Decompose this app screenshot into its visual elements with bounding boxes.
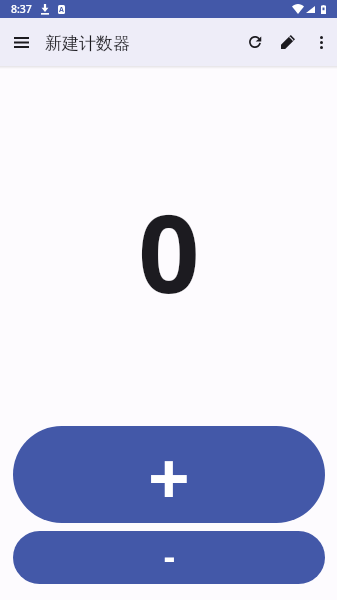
button[interactable]: More options (305, 26, 337, 58)
staticText: 0 (138, 178, 200, 325)
staticText: + (148, 427, 190, 523)
button[interactable]: + (13, 426, 325, 523)
button[interactable]: Navigation menu (7, 28, 35, 56)
button[interactable]: Reset (239, 26, 271, 58)
staticText: A (59, 5, 64, 14)
staticText: 8:37 (11, 2, 32, 16)
button[interactable]: - (13, 531, 325, 584)
staticText: - (164, 533, 175, 579)
staticText: 新建计数器 (45, 33, 130, 54)
button[interactable]: Edit (271, 25, 305, 59)
